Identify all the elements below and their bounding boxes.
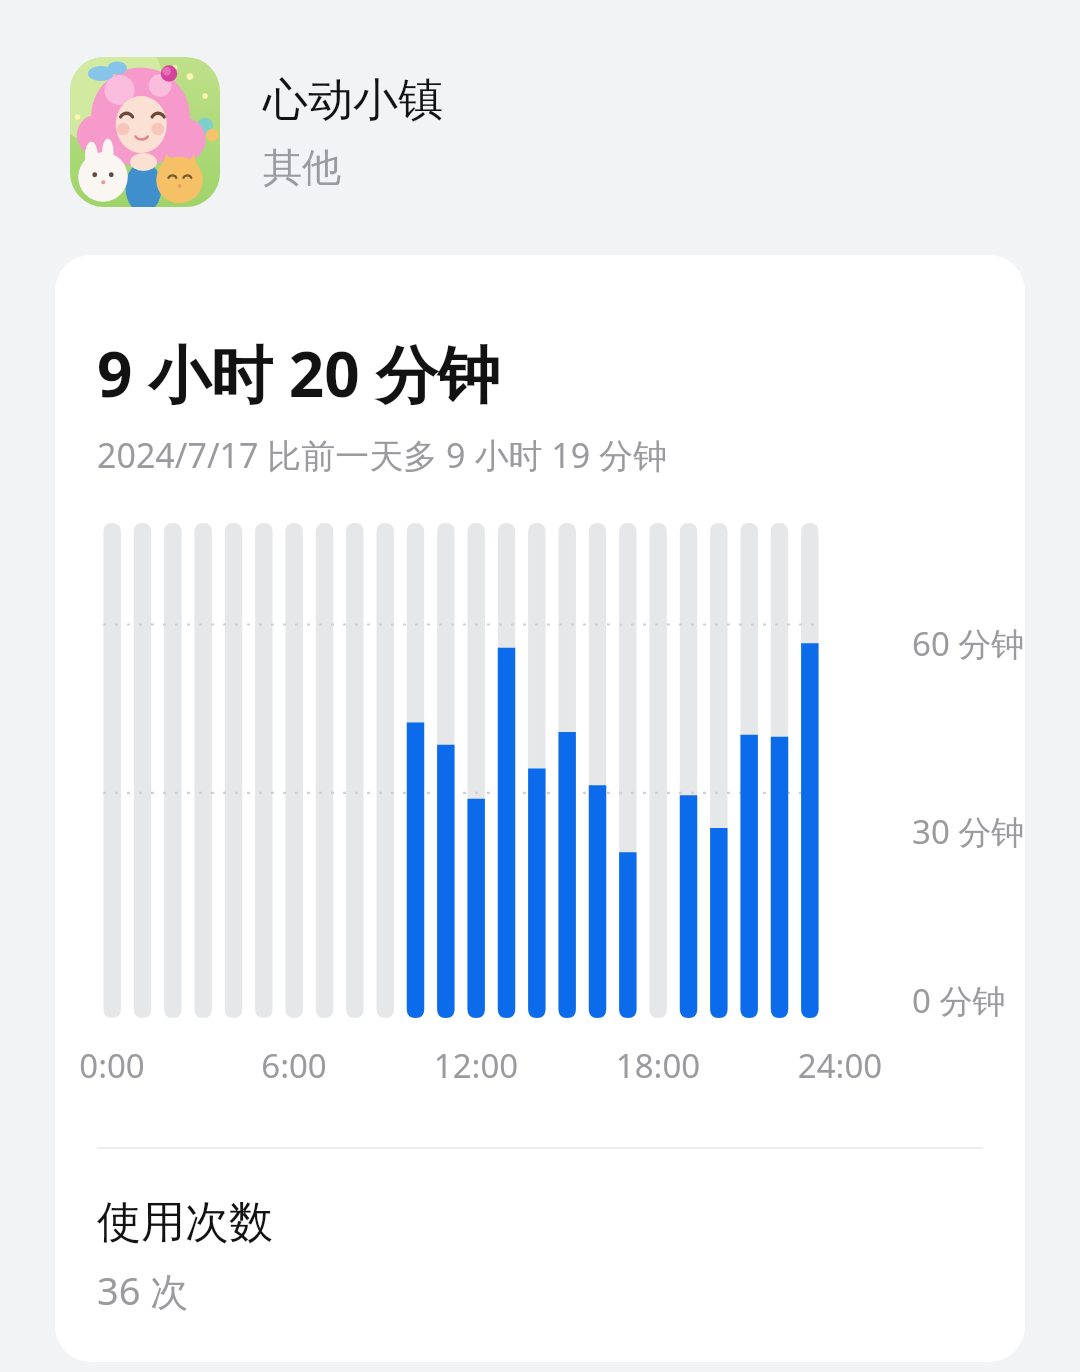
- staticText: 0:00: [57, 1043, 167, 1088]
- staticText: 2024/7/17 比前一天多 9 小时 19 分钟: [97, 432, 667, 478]
- staticText: 心动小镇: [263, 72, 443, 129]
- button[interactable]: 9 小时 20 分钟: [55, 255, 1025, 1362]
- staticText: 其他: [263, 143, 341, 192]
- staticText: 12:00: [421, 1043, 531, 1088]
- staticText: 30 分钟: [912, 809, 1025, 854]
- staticText: 使用次数: [97, 1195, 273, 1250]
- staticText: 60 分钟: [912, 621, 1025, 666]
- staticText: 18:00: [603, 1043, 713, 1088]
- button[interactable]: 心动小镇: [0, 57, 1080, 207]
- staticText: 24:00: [785, 1043, 895, 1088]
- staticText: 6:00: [239, 1043, 349, 1088]
- staticText: 36 次: [97, 1264, 189, 1316]
- staticText: 0 分钟: [912, 978, 1006, 1023]
- staticText: 9 小时 20 分钟: [97, 331, 500, 416]
